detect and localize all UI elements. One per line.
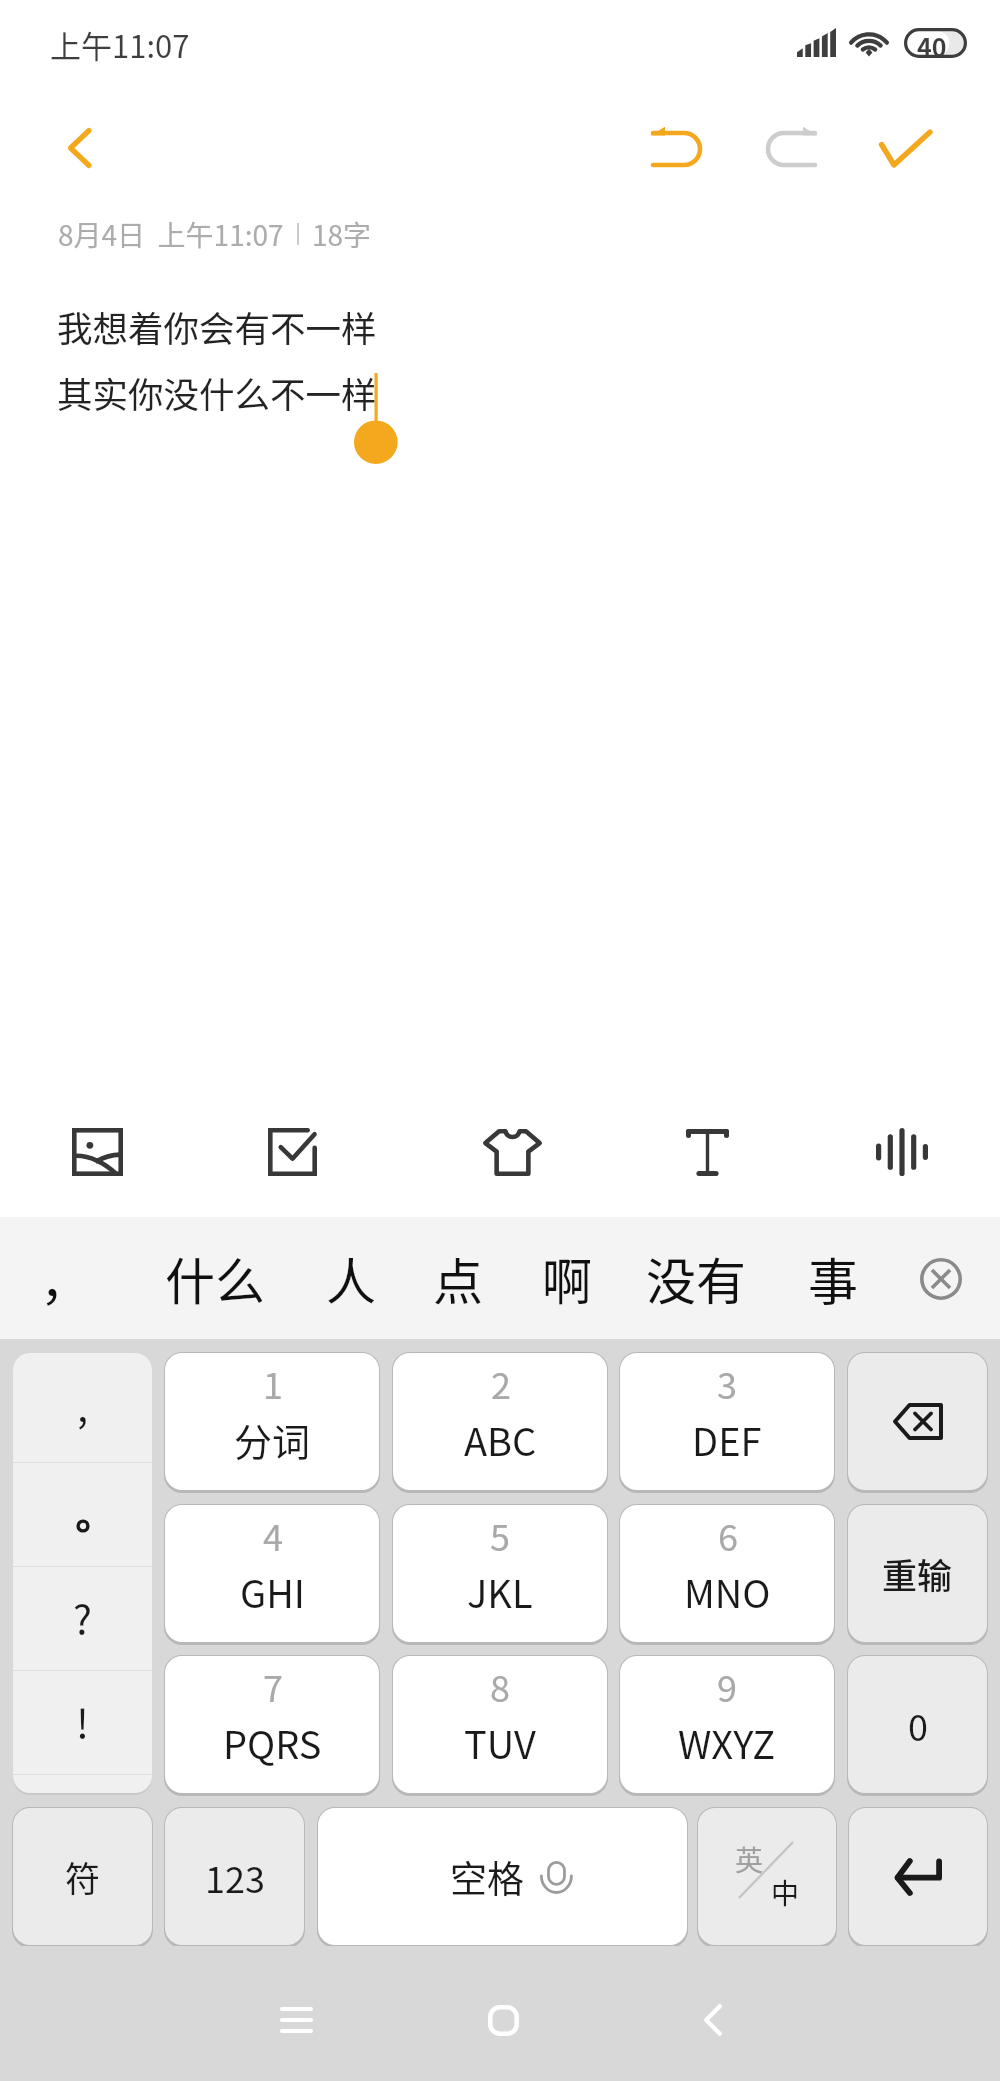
button[interactable]: 人 — [325, 1227, 376, 1329]
staticText: 点 — [433, 1242, 483, 1314]
staticText: 8月4日 上午11:07 — [58, 214, 284, 255]
button[interactable]: 重输 — [848, 1505, 987, 1642]
button[interactable]: 1 — [165, 1353, 379, 1490]
staticText: 上午11:07 — [50, 22, 190, 67]
staticText: 分词 — [234, 1412, 311, 1467]
staticText: , — [77, 1376, 89, 1434]
staticText: ， — [40, 1242, 90, 1314]
button[interactable]: 2 — [393, 1353, 607, 1490]
button[interactable]: Voice note — [847, 1097, 957, 1207]
staticText: PQRS — [223, 1715, 322, 1770]
staticText: TUV — [464, 1715, 536, 1770]
button[interactable]: 0 — [848, 1656, 987, 1793]
staticText: 123 — [205, 1851, 265, 1903]
staticText: 40 — [917, 28, 947, 58]
staticText: 7 — [263, 1660, 283, 1712]
staticText: ! — [76, 1692, 89, 1750]
button[interactable]: 8 — [393, 1656, 607, 1793]
button[interactable] — [13, 1463, 152, 1566]
staticText: 我想着你会有不一样 其实你没什么不一样 — [57, 301, 377, 418]
staticText: 空格 — [450, 1850, 524, 1904]
button[interactable]: Undo — [637, 108, 717, 188]
staticText: JKL — [467, 1564, 533, 1619]
staticText: GHI — [240, 1564, 305, 1619]
staticText: 2 — [491, 1357, 511, 1409]
staticText: 没有 — [646, 1242, 746, 1314]
staticText: 8 — [490, 1660, 510, 1712]
button[interactable]: Checklist — [237, 1097, 347, 1207]
staticText: 6 — [718, 1509, 738, 1561]
button[interactable]: 啊 — [541, 1227, 592, 1329]
button[interactable]: Hide keyboard — [910, 1248, 972, 1310]
staticText: DEF — [692, 1412, 762, 1467]
staticText: 英 — [735, 1839, 764, 1880]
staticText: 事 — [808, 1242, 858, 1314]
button[interactable]: 没有 — [645, 1227, 747, 1329]
button[interactable]: Back — [30, 108, 110, 188]
button[interactable]: 什么 — [164, 1227, 266, 1329]
staticText: ABC — [464, 1412, 537, 1467]
button[interactable]: 4 — [165, 1505, 379, 1642]
staticText: 人 — [326, 1242, 376, 1314]
staticText: MNO — [684, 1564, 771, 1619]
button[interactable]: Text format — [652, 1097, 762, 1207]
button[interactable]: Back — [653, 1960, 773, 2080]
button[interactable]: ， — [40, 1227, 90, 1329]
button[interactable]: 符 — [13, 1808, 152, 1945]
staticText: 9 — [717, 1660, 737, 1712]
button[interactable]: 空格 — [318, 1808, 687, 1945]
staticText: 18字 — [312, 214, 372, 255]
button[interactable]: 9 — [620, 1656, 834, 1793]
staticText: 符 — [65, 1851, 101, 1902]
button[interactable]: Enter — [849, 1808, 987, 1945]
staticText: 重输 — [882, 1548, 953, 1599]
button[interactable]: Recent apps — [236, 1960, 356, 2080]
button[interactable]: Switch English Chinese — [698, 1808, 836, 1945]
button[interactable]: Done — [866, 108, 946, 188]
button[interactable]: 5 — [393, 1505, 607, 1642]
staticText: 5 — [490, 1509, 510, 1561]
button[interactable]: Home — [443, 1960, 563, 2080]
button[interactable]: , — [13, 1353, 152, 1462]
button[interactable]: ! — [13, 1671, 152, 1774]
button[interactable]: 3 — [620, 1353, 834, 1490]
staticText: 中 — [771, 1872, 800, 1913]
button[interactable]: 123 — [165, 1808, 304, 1945]
staticText: 4 — [263, 1509, 283, 1561]
staticText: 什么 — [165, 1242, 265, 1314]
button[interactable]: 6 — [620, 1505, 834, 1642]
button[interactable]: 7 — [165, 1656, 379, 1793]
button[interactable]: 事 — [807, 1227, 858, 1329]
button[interactable]: Note style — [457, 1097, 567, 1207]
button[interactable]: ? — [13, 1567, 152, 1670]
staticText: 3 — [717, 1357, 737, 1409]
staticText: WXYZ — [678, 1715, 776, 1770]
button[interactable]: Insert image — [42, 1097, 152, 1207]
button[interactable]: Redo — [751, 108, 831, 188]
staticText: 啊 — [542, 1242, 592, 1314]
button[interactable]: 点 — [432, 1227, 483, 1329]
staticText: ? — [73, 1588, 92, 1646]
staticText: 1 — [263, 1357, 283, 1409]
staticText: 0 — [908, 1699, 928, 1751]
button[interactable]: Backspace — [848, 1353, 987, 1490]
